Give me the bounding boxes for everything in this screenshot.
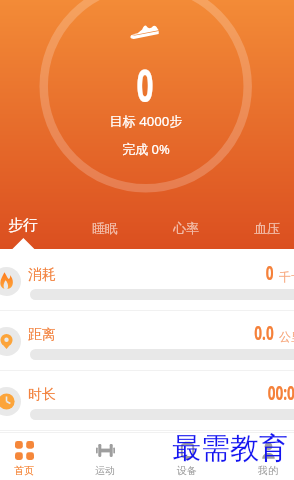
staticText: 睡眠	[92, 220, 118, 236]
staticText: 0	[266, 259, 274, 286]
staticText: 心率	[173, 220, 199, 236]
staticText: 时长	[28, 386, 56, 404]
staticText: 我的	[258, 464, 278, 477]
button[interactable]: 步行	[0, 209, 55, 241]
staticText: 完成 0%	[122, 140, 170, 158]
button[interactable]: 距离	[0, 311, 294, 371]
staticText: 0	[136, 54, 154, 115]
staticText: 00:00	[268, 379, 294, 406]
button[interactable]: 血压	[235, 212, 294, 244]
button[interactable]: 首页	[0, 433, 64, 480]
staticText: 血压	[254, 220, 280, 236]
staticText: 设备	[177, 464, 197, 477]
staticText: 消耗	[28, 266, 56, 284]
button[interactable]: 时长	[0, 371, 294, 431]
staticText: 最需教育	[172, 430, 288, 467]
staticText: 首页	[14, 464, 34, 477]
button[interactable]: 心率	[154, 212, 218, 244]
staticText: 0.0	[254, 319, 274, 346]
button[interactable]: 设备	[147, 433, 227, 480]
button[interactable]: 睡眠	[73, 212, 137, 244]
staticText: 距离	[28, 326, 56, 344]
staticText: 公里	[279, 329, 294, 344]
button[interactable]: 运动	[65, 433, 145, 480]
staticText: 千卡	[279, 269, 294, 284]
button[interactable]: 我的	[228, 433, 294, 480]
staticText: 运动	[95, 464, 115, 477]
staticText: 目标 4000步	[109, 112, 183, 130]
staticText: 步行	[8, 216, 38, 235]
button[interactable]: 消耗	[0, 251, 294, 311]
